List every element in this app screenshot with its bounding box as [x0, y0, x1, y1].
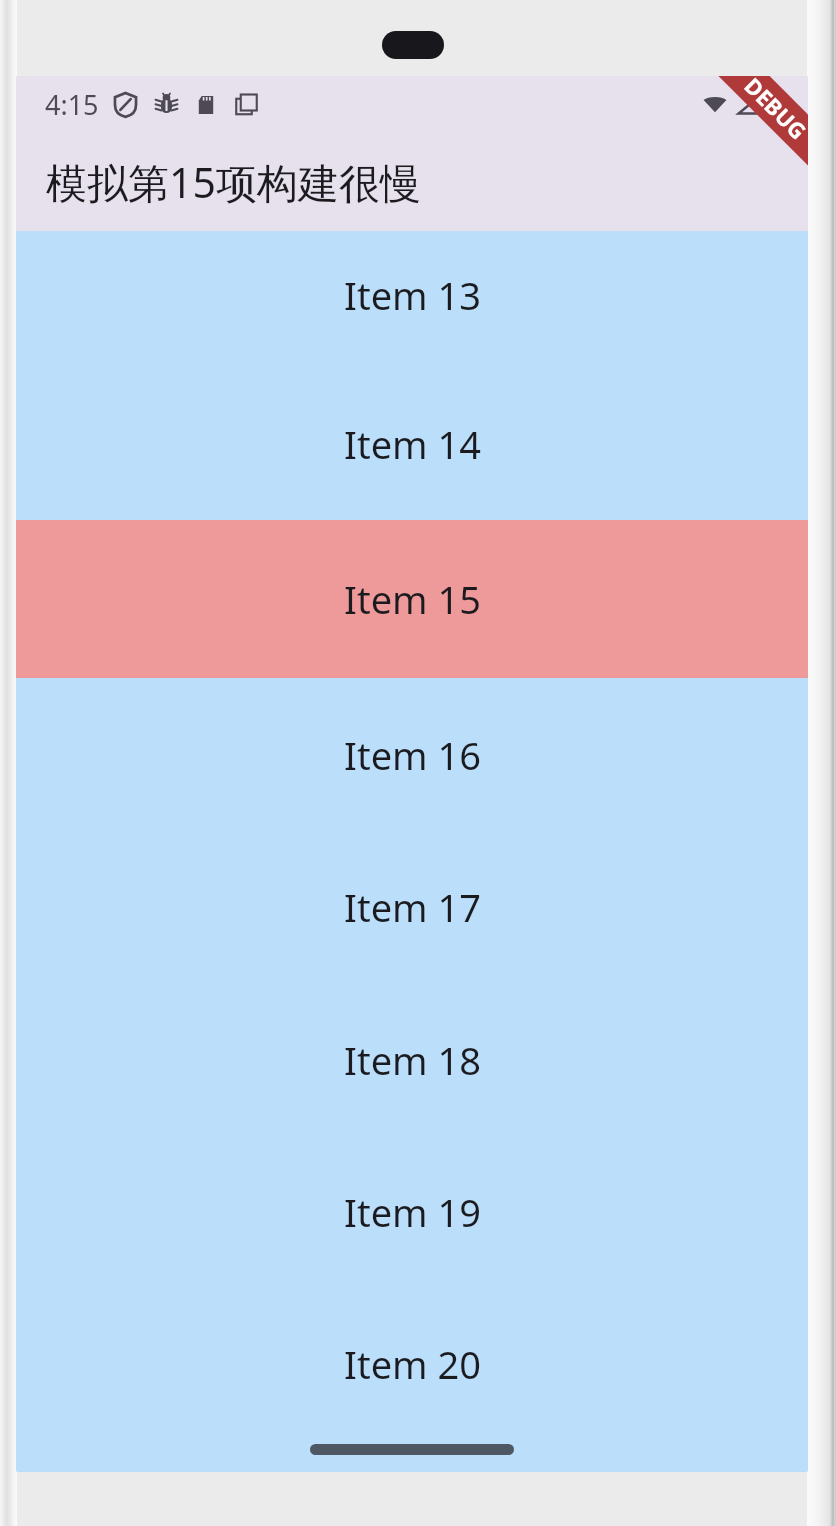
- button[interactable]: Item 20: [16, 1288, 808, 1440]
- staticText: 模拟第15项构建很慢: [46, 154, 421, 210]
- other: Debug build banner: [680, 76, 808, 204]
- staticText: Item 16: [344, 729, 481, 781]
- other: Home gesture handle: [310, 1444, 514, 1455]
- staticText: Item 20: [344, 1338, 481, 1390]
- staticText: DEBUG: [738, 76, 808, 145]
- button[interactable]: Item 14: [16, 368, 808, 520]
- staticText: Item 18: [344, 1034, 481, 1086]
- button[interactable]: Item 15: [16, 520, 808, 678]
- button[interactable]: Item 18: [16, 983, 808, 1136]
- button[interactable]: Item 13: [16, 231, 808, 368]
- button[interactable]: Item 19: [16, 1136, 808, 1288]
- staticText: Item 13: [344, 269, 481, 321]
- staticText: Item 15: [344, 573, 481, 625]
- staticText: 4:15: [45, 86, 99, 123]
- staticText: Item 17: [344, 881, 481, 933]
- staticText: Item 14: [344, 418, 481, 470]
- button[interactable]: Item 16: [16, 678, 808, 831]
- staticText: Item 19: [344, 1186, 481, 1238]
- button[interactable]: Item 17: [16, 831, 808, 983]
